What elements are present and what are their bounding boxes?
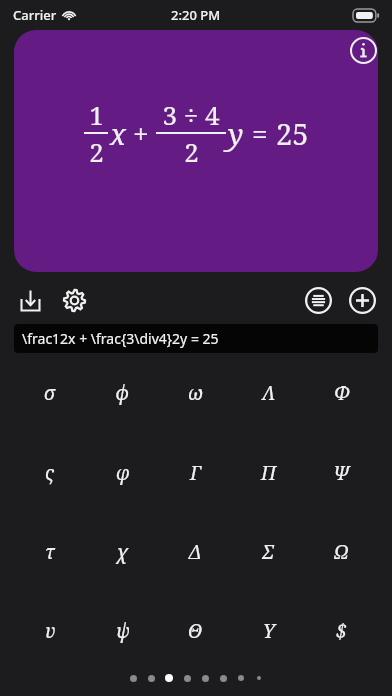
staticText: Σ xyxy=(263,539,274,565)
button[interactable]: Menu xyxy=(300,282,336,318)
button[interactable]: Σ xyxy=(232,512,305,591)
button[interactable]: υ xyxy=(14,591,86,670)
button[interactable]: Settings xyxy=(56,282,92,318)
button[interactable] xyxy=(14,30,378,272)
button[interactable]: ς xyxy=(14,433,86,512)
staticText: χ xyxy=(117,539,128,565)
staticText: 25 xyxy=(276,114,309,153)
staticText: Π xyxy=(261,460,277,486)
button[interactable]: χ xyxy=(86,512,159,591)
staticText: 2 xyxy=(89,134,104,169)
button[interactable]: ω xyxy=(159,353,232,433)
staticText: Ψ xyxy=(333,460,350,486)
staticText: Ω xyxy=(334,539,349,565)
button[interactable]: Ψ xyxy=(305,433,378,512)
button[interactable]: Γ xyxy=(159,433,232,512)
staticText: τ xyxy=(45,539,55,565)
staticText: = xyxy=(252,114,268,152)
button[interactable]: Π xyxy=(232,433,305,512)
button[interactable]: Info xyxy=(345,32,381,68)
staticText: x xyxy=(110,114,126,153)
staticText: 3 ÷ 4 xyxy=(162,97,220,132)
staticText: υ xyxy=(45,618,56,644)
staticText: \frac12x + \frac{3\div4}2y = 25 xyxy=(22,329,219,348)
button[interactable]: Add xyxy=(344,282,380,318)
staticText: ω xyxy=(188,380,204,406)
button[interactable]: Ω xyxy=(305,512,378,591)
staticText: Φ xyxy=(334,380,350,406)
button[interactable]: $ xyxy=(305,591,378,670)
staticText: ψ xyxy=(116,618,130,644)
button[interactable]: σ xyxy=(14,353,86,433)
button[interactable]: Λ xyxy=(232,353,305,433)
staticText: Υ xyxy=(263,618,275,644)
button[interactable]: Φ xyxy=(305,353,378,433)
staticText: y xyxy=(228,114,244,153)
staticText: σ xyxy=(44,380,56,406)
staticText: ϕ xyxy=(116,380,130,406)
staticText: Θ xyxy=(188,618,203,644)
staticText: ς xyxy=(45,460,55,486)
staticText: φ xyxy=(116,460,130,486)
button[interactable]: φ xyxy=(86,433,159,512)
button[interactable]: τ xyxy=(14,512,86,591)
staticText: 1 xyxy=(89,97,104,132)
staticText: + xyxy=(133,114,149,152)
button[interactable]: Θ xyxy=(159,591,232,670)
staticText: 2:20 PM xyxy=(171,6,221,24)
staticText: 2 xyxy=(184,134,199,169)
staticText: Γ xyxy=(190,460,202,486)
staticText: $ xyxy=(336,618,347,644)
button[interactable]: ψ xyxy=(86,591,159,670)
button[interactable]: Δ xyxy=(159,512,232,591)
button[interactable]: Υ xyxy=(232,591,305,670)
button[interactable]: ϕ xyxy=(86,353,159,433)
staticText: Δ xyxy=(189,539,202,565)
staticText: Λ xyxy=(262,380,276,406)
button[interactable]: Save xyxy=(12,282,48,318)
button[interactable]: \frac12x + \frac{3\div4}2y = 25 xyxy=(14,324,378,353)
staticText: Carrier xyxy=(13,6,57,24)
